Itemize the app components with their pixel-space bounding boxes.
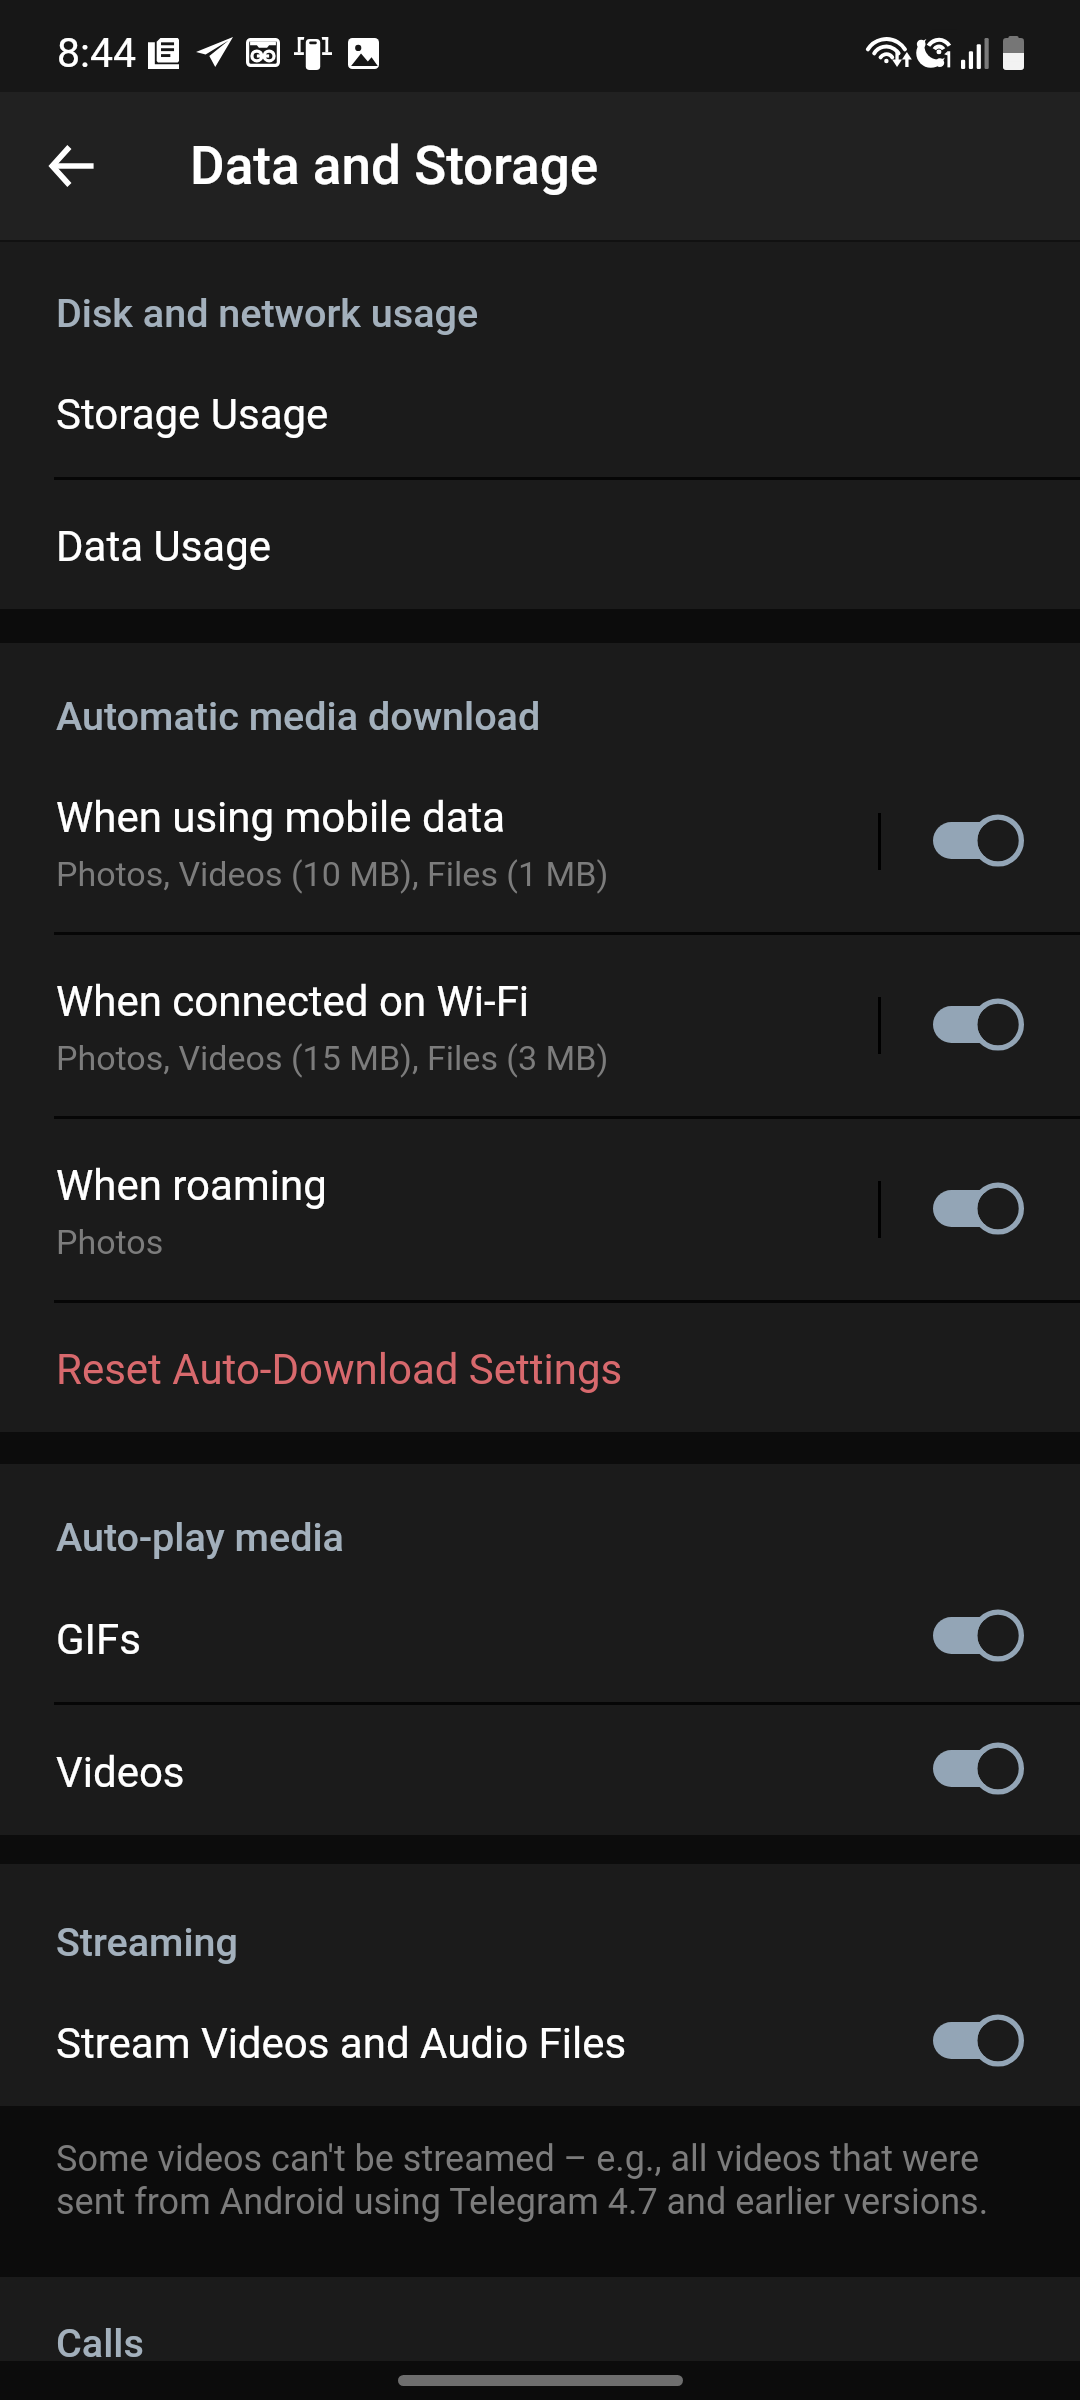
staticText: When roaming [56,1161,327,1210]
button[interactable]: Storage Usage [0,348,1080,477]
staticText: Some videos can't be streamed – e.g., al… [56,2138,1020,2223]
staticText: Streaming [56,1919,238,1965]
staticText: Photos, Videos (15 MB), Files (3 MB) [56,1038,609,1078]
staticText: Calls [56,2320,144,2361]
staticText: Stream Videos and Audio Files [56,2019,627,2068]
staticText: 8:44 [57,29,137,77]
button[interactable]: When roaming [0,1119,1080,1300]
staticText: Photos, Videos (10 MB), Files (1 MB) [56,854,609,894]
staticText: When using mobile data [56,793,506,842]
staticText: Storage Usage [56,390,329,439]
button[interactable]: Back [28,122,116,210]
staticText: Disk and network usage [56,290,479,336]
staticText: Photos [56,1222,164,1262]
staticText: When connected on Wi-Fi [56,977,530,1026]
button[interactable]: When connected on Wi-Fi [0,935,1080,1116]
button[interactable]: Data Usage [0,480,1080,609]
button[interactable]: Stream Videos and Audio Files [0,1977,1080,2106]
button[interactable]: GIFs [0,1572,1080,1702]
staticText: Reset Auto-Download Settings [56,1345,623,1394]
staticText: Automatic media download [56,693,541,739]
staticText: GIFs [56,1615,141,1664]
staticText: Videos [56,1748,185,1797]
staticText: Data Usage [56,522,272,571]
button[interactable]: Videos [0,1705,1080,1835]
staticText: Auto-play media [56,1514,344,1560]
staticText: Data and Storage [190,135,599,197]
button[interactable]: Reset Auto-Download Settings [0,1303,1080,1432]
button[interactable]: When using mobile data [0,751,1080,932]
